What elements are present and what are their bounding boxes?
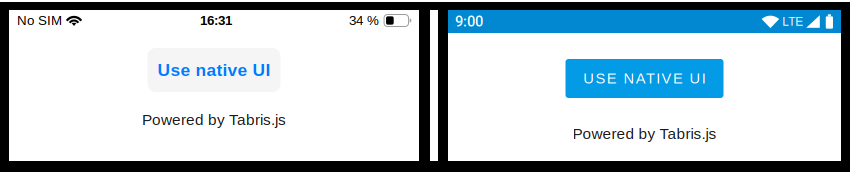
button[interactable]: USE NATIVE UI [565, 59, 723, 98]
staticText: No SIM [17, 13, 62, 28]
staticText: Use native UI [157, 60, 270, 80]
staticText: 34 % [349, 13, 379, 28]
button[interactable]: Use native UI [147, 48, 280, 92]
staticText: Powered by Tabris.js [142, 111, 286, 128]
staticText: 16:31 [200, 13, 232, 28]
staticText: 9:00 [455, 13, 483, 30]
staticText: LTE [782, 15, 803, 28]
staticText: Powered by Tabris.js [572, 125, 716, 142]
staticText: USE NATIVE UI [583, 70, 706, 87]
